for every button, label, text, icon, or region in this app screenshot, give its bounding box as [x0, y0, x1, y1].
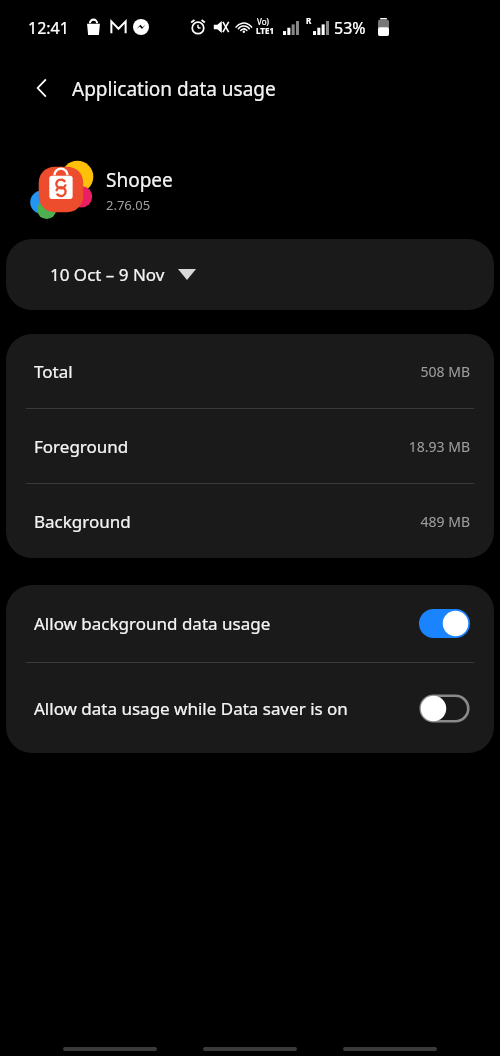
staticText: Background [34, 510, 131, 533]
button[interactable]: Off [419, 694, 470, 723]
button[interactable]: Navigation [203, 1040, 297, 1056]
staticText: 508 MB [420, 362, 470, 381]
staticText: Allow background data usage [34, 612, 271, 635]
staticText: Total [34, 360, 73, 383]
staticText: Foreground [34, 435, 129, 458]
button[interactable]: 10 Oct – 9 Nov [6, 239, 494, 310]
staticText: 10 Oct – 9 Nov [50, 263, 165, 286]
button[interactable]: Allow background data usage [6, 585, 494, 662]
staticText: 18.93 MB [408, 437, 470, 456]
staticText: 53% [334, 17, 366, 39]
button[interactable]: Foreground [6, 409, 494, 483]
staticText: 489 MB [420, 512, 470, 531]
staticText: R [306, 15, 312, 26]
staticText: 12:41 [28, 17, 69, 39]
staticText: Allow data usage while Data saver is on [34, 697, 348, 720]
button[interactable]: Navigation [343, 1040, 437, 1056]
button[interactable]: Background [6, 484, 494, 558]
button[interactable]: Back [18, 64, 66, 112]
staticText: LTE1 [256, 25, 274, 36]
button[interactable]: On [419, 609, 470, 638]
button[interactable]: Navigation [63, 1040, 157, 1056]
staticText: Vo) [257, 16, 269, 27]
button[interactable]: Allow data usage while Data saver is on [6, 663, 494, 753]
staticText: Shopee [106, 167, 173, 193]
staticText: 2.76.05 [106, 196, 151, 214]
staticText: Application data usage [72, 76, 276, 102]
button[interactable]: Total [6, 334, 494, 408]
